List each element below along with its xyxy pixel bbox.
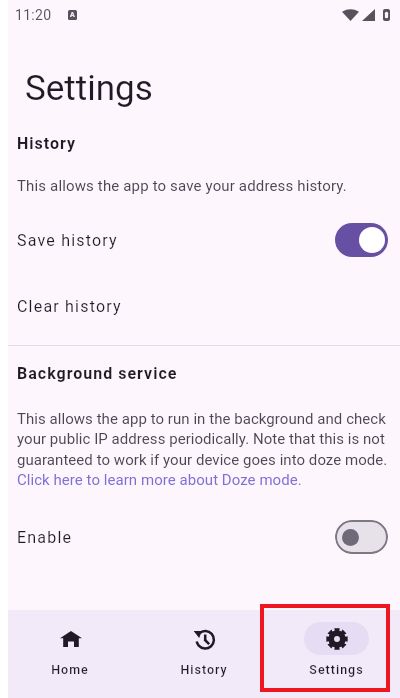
staticText: Background service <box>17 364 178 383</box>
staticText: Enable <box>17 528 73 547</box>
staticText: Clear history <box>17 297 122 316</box>
staticText: A <box>70 11 75 19</box>
staticText: History <box>17 134 77 153</box>
staticText: Click here to learn more about Doze mode… <box>17 471 302 489</box>
button[interactable]: Settings <box>270 610 400 698</box>
button[interactable]: History <box>137 610 270 698</box>
button[interactable]: Enable <box>0 517 400 557</box>
staticText: History <box>180 662 228 677</box>
staticText: Save history <box>17 231 118 250</box>
other: Settings <box>326 628 348 650</box>
staticText: guaranteed to work if your device goes i… <box>17 451 388 469</box>
button[interactable]: Home <box>3 610 137 698</box>
other: Home <box>60 628 82 650</box>
button[interactable]: Save history <box>0 220 400 260</box>
staticText: your public IP address periodically. Not… <box>17 430 385 448</box>
staticText: Settings <box>25 68 153 109</box>
staticText: Settings <box>309 662 364 677</box>
other: History <box>193 628 215 650</box>
button[interactable]: Click here to learn more about Doze mode… <box>17 471 302 489</box>
staticText: Home <box>51 662 89 677</box>
staticText: 11:20 <box>15 7 52 23</box>
staticText: This allows the app to save your address… <box>17 177 347 195</box>
button[interactable]: Clear history <box>0 288 400 325</box>
staticText: This allows the app to run in the backgr… <box>17 410 386 428</box>
